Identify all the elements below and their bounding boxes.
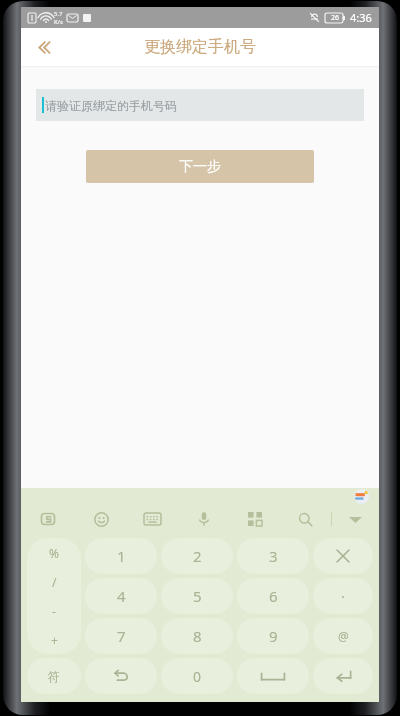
staticText: / xyxy=(52,574,57,590)
button[interactable]: 9 xyxy=(237,618,309,654)
staticText: 4:36 xyxy=(350,10,372,25)
button[interactable]: 请验证原绑定的手机号码 xyxy=(36,89,364,121)
button[interactable]: 7 xyxy=(85,618,157,654)
staticText: % xyxy=(49,545,59,561)
button[interactable]: 5 xyxy=(161,578,233,614)
button[interactable]: Hide keyboard xyxy=(332,504,379,534)
button[interactable]: 符 xyxy=(27,658,81,694)
staticText: K/s xyxy=(54,18,63,26)
staticText: 2 xyxy=(193,546,202,566)
staticText: + xyxy=(51,632,58,648)
staticText: 8 xyxy=(193,626,202,646)
staticText: 4 xyxy=(117,586,126,606)
button[interactable]: 1 xyxy=(85,538,157,574)
staticText: 26 xyxy=(331,13,340,23)
button[interactable]: 6 xyxy=(237,578,309,614)
staticText: 3 xyxy=(269,546,278,566)
button[interactable]: At sign xyxy=(313,618,373,654)
button[interactable]: Keyboard layout xyxy=(127,504,178,534)
button[interactable]: + xyxy=(27,625,81,654)
button[interactable]: Back xyxy=(21,28,65,66)
button[interactable]: Dot xyxy=(313,578,373,614)
button[interactable]: Space xyxy=(237,658,309,694)
staticText: 1 xyxy=(117,546,126,566)
staticText: 请验证原绑定的手机号码 xyxy=(45,98,177,113)
button[interactable]: 8 xyxy=(161,618,233,654)
button[interactable]: Delete xyxy=(313,538,373,574)
button[interactable]: More apps xyxy=(229,504,280,534)
button[interactable]: 0 xyxy=(161,658,233,694)
staticText: 符 xyxy=(48,669,60,684)
staticText: - xyxy=(52,603,56,619)
staticText: 6 xyxy=(269,586,278,606)
staticText: 5 xyxy=(193,586,202,606)
staticText: 5.7 xyxy=(54,10,63,18)
staticText: 0 xyxy=(193,667,202,686)
staticText: 9 xyxy=(269,626,278,646)
button[interactable]: Enter xyxy=(313,658,373,694)
button[interactable]: Search xyxy=(280,504,331,534)
button[interactable]: Sogou input xyxy=(21,504,76,534)
staticText: @ xyxy=(338,628,349,644)
button[interactable]: Voice input xyxy=(178,504,229,534)
button[interactable]: 4 xyxy=(85,578,157,614)
button[interactable]: / xyxy=(27,567,81,596)
button[interactable]: Promotion xyxy=(354,489,369,504)
staticText: 7 xyxy=(117,626,126,646)
button[interactable]: % xyxy=(27,538,81,567)
staticText: 下一步 xyxy=(179,158,221,176)
button[interactable]: Emoji xyxy=(76,504,127,534)
staticText: · xyxy=(341,587,345,606)
button[interactable]: Undo xyxy=(85,658,157,694)
button[interactable]: 下一步 xyxy=(86,150,314,183)
button[interactable]: 3 xyxy=(237,538,309,574)
staticText: 更换绑定手机号 xyxy=(144,37,256,57)
button[interactable]: 2 xyxy=(161,538,233,574)
